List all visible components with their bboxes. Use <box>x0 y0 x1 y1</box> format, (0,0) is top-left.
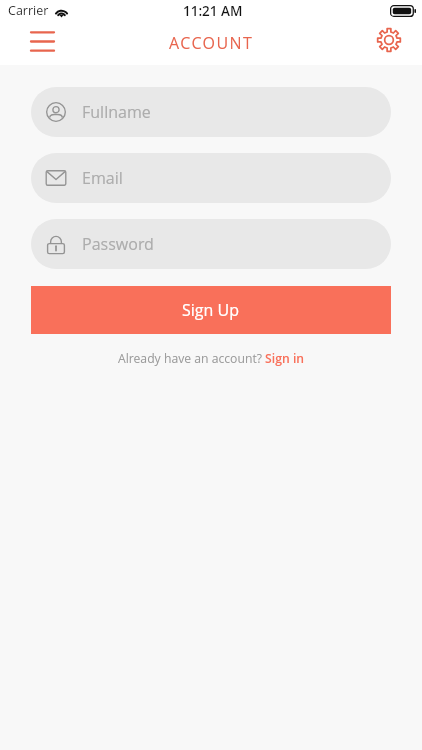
staticText: 11:21 AM <box>183 2 243 20</box>
staticText: Already have an account? Sign in <box>118 350 305 367</box>
button[interactable]: Password <box>31 219 391 269</box>
button[interactable]: Menu <box>24 26 61 57</box>
button[interactable]: Fullname <box>31 87 391 137</box>
staticText: Carrier <box>8 2 49 19</box>
staticText: ACCOUNT <box>169 32 254 54</box>
staticText: Fullname <box>82 101 151 123</box>
button[interactable]: Sign Up <box>31 286 391 334</box>
button[interactable]: Settings <box>375 26 403 54</box>
staticText: Email <box>82 167 123 189</box>
staticText: Password <box>82 233 154 255</box>
button[interactable]: Email <box>31 153 391 203</box>
staticText: Sign Up <box>182 299 240 321</box>
